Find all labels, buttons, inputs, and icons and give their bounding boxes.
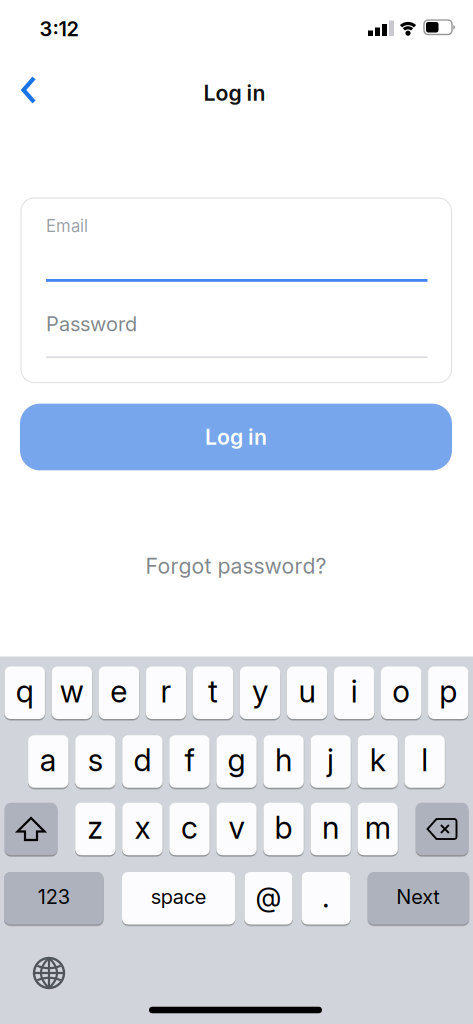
staticText: u — [299, 673, 316, 710]
staticText: Next — [396, 885, 440, 909]
staticText: f — [184, 741, 194, 778]
button[interactable]: b — [263, 803, 304, 855]
staticText: s — [88, 741, 103, 778]
staticText: Log in — [203, 80, 265, 106]
button[interactable]: Delete — [416, 803, 468, 855]
staticText: m — [365, 809, 391, 846]
button[interactable]: n — [310, 803, 351, 855]
button[interactable]: t — [193, 666, 233, 719]
staticText: Log in — [205, 424, 267, 450]
button[interactable]: space — [122, 872, 235, 924]
staticText: c — [181, 809, 198, 846]
staticText: k — [370, 741, 386, 778]
staticText: space — [151, 885, 207, 909]
button[interactable]: r — [146, 666, 186, 719]
button[interactable]: Forgot password? — [137, 545, 334, 587]
staticText: Password — [46, 312, 137, 336]
staticText: 3:12 — [39, 17, 78, 41]
button[interactable]: j — [310, 735, 351, 788]
button[interactable]: i — [334, 666, 374, 719]
button[interactable]: Log in — [20, 404, 452, 470]
staticText: . — [322, 879, 330, 914]
staticText: p — [439, 673, 457, 710]
staticText: q — [16, 673, 34, 710]
button[interactable]: u — [287, 666, 327, 719]
button[interactable]: Back — [13, 68, 46, 112]
staticText: g — [227, 741, 245, 778]
button[interactable]: k — [357, 735, 398, 788]
staticText: b — [275, 809, 293, 846]
button[interactable]: Next — [368, 872, 469, 924]
button[interactable]: o — [381, 666, 421, 719]
button[interactable]: d — [122, 735, 163, 788]
staticText: i — [351, 673, 358, 710]
button[interactable]: Next keyboard — [33, 957, 65, 989]
button[interactable]: v — [216, 803, 257, 855]
button[interactable]: Shift — [5, 803, 57, 855]
button[interactable]: g — [216, 735, 257, 788]
button[interactable]: y — [240, 666, 280, 719]
staticText: n — [322, 809, 339, 846]
button[interactable]: l — [404, 735, 445, 788]
button[interactable]: m — [357, 803, 398, 855]
button[interactable]: 123 — [4, 872, 103, 924]
button[interactable]: p — [428, 666, 468, 719]
button[interactable]: . — [301, 872, 350, 924]
button[interactable]: w — [52, 666, 92, 719]
button[interactable]: @ — [244, 872, 292, 924]
staticText: t — [208, 673, 218, 710]
staticText: w — [60, 673, 84, 710]
button[interactable]: c — [169, 803, 210, 855]
staticText: o — [392, 673, 410, 710]
button[interactable]: s — [75, 735, 116, 788]
staticText: y — [252, 673, 268, 710]
button[interactable]: x — [122, 803, 163, 855]
staticText: Forgot password? — [145, 553, 326, 579]
staticText: z — [87, 809, 103, 846]
button[interactable]: z — [75, 803, 116, 855]
staticText: l — [421, 741, 428, 778]
button[interactable]: a — [28, 735, 68, 788]
staticText: j — [327, 741, 334, 778]
staticText: h — [275, 741, 292, 778]
staticText: x — [134, 809, 150, 846]
staticText: @ — [255, 881, 281, 913]
staticText: 123 — [38, 885, 70, 909]
staticText: r — [160, 673, 171, 710]
button[interactable]: e — [99, 666, 139, 719]
staticText: v — [228, 809, 244, 846]
staticText: e — [110, 673, 127, 710]
button[interactable]: f — [169, 735, 210, 788]
button[interactable]: q — [5, 666, 45, 719]
staticText: Email — [46, 216, 88, 236]
staticText: d — [133, 741, 151, 778]
staticText: a — [40, 741, 57, 778]
button[interactable]: h — [263, 735, 304, 788]
